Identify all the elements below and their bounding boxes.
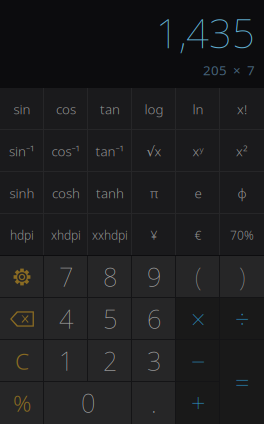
staticText: 7 xyxy=(59,260,73,294)
button[interactable]: ) xyxy=(220,256,264,298)
staticText: sin xyxy=(13,100,30,118)
button[interactable]: C xyxy=(0,340,44,382)
staticText: sin⁻¹ xyxy=(9,142,35,160)
staticText: 0 xyxy=(81,386,95,420)
staticText: tan xyxy=(100,100,120,118)
button[interactable]: π xyxy=(132,172,176,214)
staticText: cos⁻¹ xyxy=(51,142,80,160)
staticText: 1,435 xyxy=(156,6,255,59)
staticText: + xyxy=(191,386,205,420)
staticText: = xyxy=(235,365,249,399)
button[interactable]: × xyxy=(176,298,220,340)
button[interactable]: Delete xyxy=(0,298,44,340)
button[interactable]: xhdpi xyxy=(44,214,88,256)
staticText: 8 xyxy=(103,260,117,294)
button[interactable]: − xyxy=(176,340,220,382)
staticText: . xyxy=(151,386,157,420)
button[interactable]: cos⁻¹ xyxy=(44,130,88,172)
staticText: xhdpi xyxy=(51,227,81,243)
staticText: φ xyxy=(237,184,246,202)
staticText: ¥ xyxy=(150,227,157,243)
staticText: tan⁻¹ xyxy=(95,142,124,160)
staticText: sinh xyxy=(9,184,34,202)
button[interactable]: € xyxy=(176,214,220,256)
staticText: log xyxy=(144,100,163,118)
staticText: π xyxy=(150,184,158,202)
staticText: xʸ xyxy=(192,142,203,160)
staticText: xxhdpi xyxy=(92,227,128,243)
button[interactable]: e xyxy=(176,172,220,214)
button[interactable]: + xyxy=(176,382,220,424)
staticText: 2 xyxy=(103,344,117,378)
staticText: √x xyxy=(146,142,161,160)
button[interactable]: x! xyxy=(220,88,264,130)
button[interactable]: φ xyxy=(220,172,264,214)
button[interactable]: 1 xyxy=(44,340,88,382)
button[interactable]: Settings xyxy=(0,256,44,298)
staticText: cos xyxy=(56,100,76,118)
staticText: hdpi xyxy=(10,227,34,243)
staticText: e xyxy=(194,184,201,202)
staticText: cosh xyxy=(52,184,80,202)
staticText: tanh xyxy=(96,184,124,202)
button[interactable]: tanh xyxy=(88,172,132,214)
button[interactable]: 6 xyxy=(132,298,176,340)
button[interactable]: log xyxy=(132,88,176,130)
button[interactable]: cos xyxy=(44,88,88,130)
staticText: 6 xyxy=(147,302,161,336)
button[interactable]: 2 xyxy=(88,340,132,382)
staticText: 9 xyxy=(147,260,161,294)
button[interactable]: ¥ xyxy=(132,214,176,256)
staticText: x! xyxy=(237,100,247,118)
staticText: × xyxy=(191,302,205,336)
button[interactable]: 8 xyxy=(88,256,132,298)
button[interactable]: 70% xyxy=(220,214,264,256)
staticText: ) xyxy=(239,260,245,294)
staticText: 70% xyxy=(230,227,254,243)
button[interactable]: sin⁻¹ xyxy=(0,130,44,172)
button[interactable]: 5 xyxy=(88,298,132,340)
staticText: C xyxy=(15,346,29,376)
button[interactable]: √x xyxy=(132,130,176,172)
staticText: 205 × 7 xyxy=(203,61,255,79)
staticText: ln xyxy=(192,100,203,118)
button[interactable]: = xyxy=(220,340,264,424)
staticText: 5 xyxy=(103,302,117,336)
button[interactable]: x² xyxy=(220,130,264,172)
button[interactable]: ln xyxy=(176,88,220,130)
button[interactable]: 9 xyxy=(132,256,176,298)
staticText: ÷ xyxy=(235,302,249,336)
button[interactable]: 7 xyxy=(44,256,88,298)
button[interactable]: hdpi xyxy=(0,214,44,256)
button[interactable]: 4 xyxy=(44,298,88,340)
button[interactable]: ( xyxy=(176,256,220,298)
staticText: % xyxy=(13,388,31,418)
button[interactable]: xxhdpi xyxy=(88,214,132,256)
staticText: € xyxy=(194,227,201,243)
staticText: − xyxy=(191,344,205,378)
button[interactable]: tan⁻¹ xyxy=(88,130,132,172)
button[interactable]: cosh xyxy=(44,172,88,214)
button[interactable]: ÷ xyxy=(220,298,264,340)
button[interactable]: . xyxy=(132,382,176,424)
button[interactable]: 0 xyxy=(44,382,132,424)
button[interactable]: tan xyxy=(88,88,132,130)
staticText: 1 xyxy=(59,344,73,378)
button[interactable]: sinh xyxy=(0,172,44,214)
staticText: 4 xyxy=(59,302,73,336)
staticText: x² xyxy=(236,142,248,160)
button[interactable]: 3 xyxy=(132,340,176,382)
button[interactable]: % xyxy=(0,382,44,424)
staticText: ( xyxy=(195,260,201,294)
staticText: 3 xyxy=(147,344,161,378)
button[interactable]: xʸ xyxy=(176,130,220,172)
button[interactable]: sin xyxy=(0,88,44,130)
